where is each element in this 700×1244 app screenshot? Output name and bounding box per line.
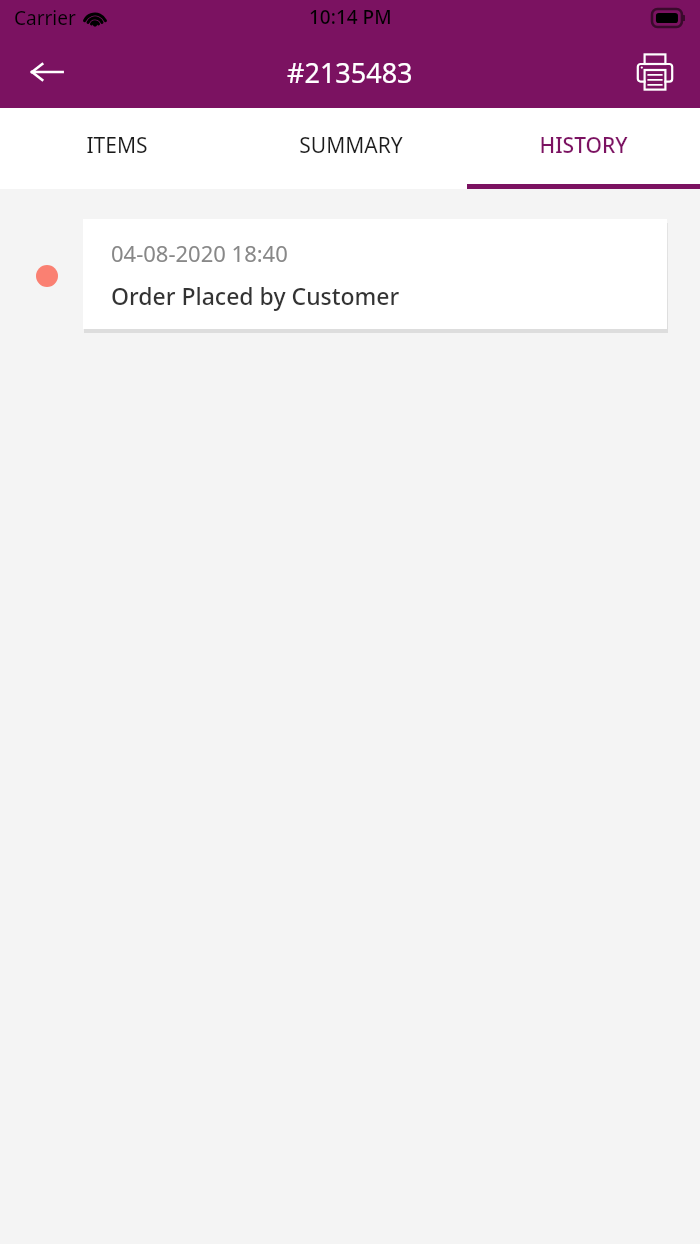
staticText: 04-08-2020 18:40 [111, 238, 288, 268]
button[interactable]: Back [18, 43, 76, 101]
button[interactable]: 04-08-2020 18:40 [83, 219, 667, 329]
staticText: 10:14 PM [309, 4, 392, 30]
staticText: ITEMS [86, 131, 148, 160]
staticText: HISTORY [539, 131, 628, 160]
button[interactable]: HISTORY [467, 108, 700, 189]
staticText: Carrier [14, 5, 76, 31]
button[interactable]: SUMMARY [234, 108, 467, 189]
button[interactable]: Print [626, 43, 684, 101]
staticText: SUMMARY [299, 131, 403, 160]
button[interactable]: ITEMS [0, 108, 234, 189]
staticText: Order Placed by Customer [111, 280, 400, 311]
staticText: #2135483 [287, 54, 413, 91]
